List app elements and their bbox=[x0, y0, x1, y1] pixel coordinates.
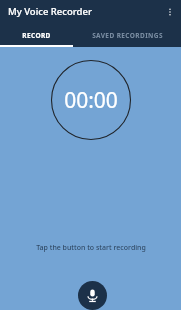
staticText: SAVED RECORDINGS bbox=[92, 31, 163, 40]
button[interactable]: RECORD bbox=[0, 23, 73, 47]
button[interactable]: More options bbox=[158, 0, 181, 23]
staticText: Tap the button to start recording bbox=[36, 243, 146, 253]
staticText: My Voice Recorder bbox=[8, 5, 92, 18]
button[interactable]: SAVED RECORDINGS bbox=[73, 23, 181, 47]
button[interactable]: Start recording bbox=[78, 281, 107, 310]
staticText: 00:00 bbox=[64, 86, 118, 115]
staticText: RECORD bbox=[22, 31, 51, 40]
